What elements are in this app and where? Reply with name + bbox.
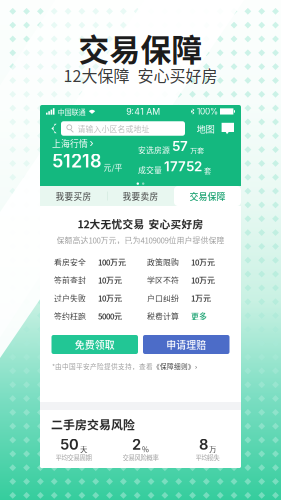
staticText: 签约枉跑: [54, 310, 86, 322]
staticText: 请输入小区名或地址: [77, 123, 149, 134]
staticText: 交易风险概率: [122, 453, 158, 462]
button[interactable]: 上海行情: [52, 138, 122, 172]
staticText: 地图: [197, 122, 215, 135]
staticText: 学区不符: [147, 274, 179, 286]
staticText: %: [142, 443, 149, 454]
button[interactable]: 《保障细则》›: [153, 362, 197, 370]
staticText: 签前查封: [54, 274, 86, 286]
staticText: 二手房交易风险: [51, 415, 135, 433]
staticText: 平均损失: [195, 453, 219, 462]
staticText: 《保障细则》›: [153, 361, 197, 371]
staticText: 政策限购: [147, 256, 179, 268]
button[interactable]: 地图: [197, 122, 215, 135]
staticText: 申请理赔: [166, 337, 206, 352]
staticText: 天: [80, 443, 87, 454]
staticText: 5000元: [98, 310, 122, 322]
staticText: 中国联通: [57, 106, 85, 117]
button[interactable]: 交易保障: [174, 186, 241, 206]
button[interactable]: 申请理赔: [143, 335, 229, 354]
staticText: 10万元: [191, 274, 215, 286]
staticText: 交易保障: [189, 189, 225, 202]
staticText: 10万元: [98, 274, 122, 286]
staticText: 税费计算: [147, 310, 179, 322]
staticText: 万套: [190, 145, 204, 155]
button[interactable]: 免费领取: [51, 335, 138, 354]
staticText: 看房安全: [54, 256, 86, 268]
staticText: 安选房源: [138, 144, 170, 155]
staticText: 17752: [164, 158, 202, 174]
staticText: 保额高达100万元，已为4109009位用户提供保障: [56, 234, 224, 246]
staticText: 2: [132, 436, 141, 453]
button[interactable]: 返回: [47, 121, 61, 136]
staticText: 平均交易周期: [55, 453, 91, 462]
staticText: 我要买房: [55, 190, 91, 202]
staticText: 12大无忧交易 安心买好房: [77, 216, 203, 231]
staticText: 50: [60, 436, 79, 453]
staticText: ›: [89, 137, 93, 150]
staticText: *由中国平安产险提供支持，查看: [52, 361, 153, 371]
staticText: 10万元: [98, 292, 122, 304]
staticText: 交易保障: [78, 26, 202, 70]
staticText: 成交量: [138, 164, 162, 176]
staticText: 套: [204, 165, 211, 176]
staticText: 10万元: [191, 256, 215, 268]
staticText: 8: [199, 436, 208, 453]
staticText: 9:41 AM: [126, 106, 160, 117]
staticText: 万: [209, 443, 216, 454]
button[interactable]: 我要卖房: [107, 186, 174, 206]
staticText: 免费领取: [75, 337, 115, 352]
staticText: 更多: [191, 310, 207, 322]
staticText: 我要卖房: [122, 190, 158, 202]
staticText: 过户失败: [54, 292, 86, 304]
staticText: 100%: [197, 106, 218, 116]
staticText: 51218: [52, 150, 102, 172]
staticText: 1万元: [191, 292, 211, 304]
staticText: 12大保障 安心买好房: [63, 63, 217, 87]
button[interactable]: 请输入小区名或地址: [61, 121, 185, 136]
staticText: 户口纠纷: [147, 292, 179, 304]
staticText: 57: [172, 138, 188, 154]
staticText: 100万元: [98, 256, 126, 268]
staticText: 上海行情: [52, 137, 88, 149]
staticText: 元/平: [103, 161, 122, 173]
button[interactable]: 消息: [222, 123, 234, 134]
button[interactable]: 我要买房: [40, 186, 107, 206]
